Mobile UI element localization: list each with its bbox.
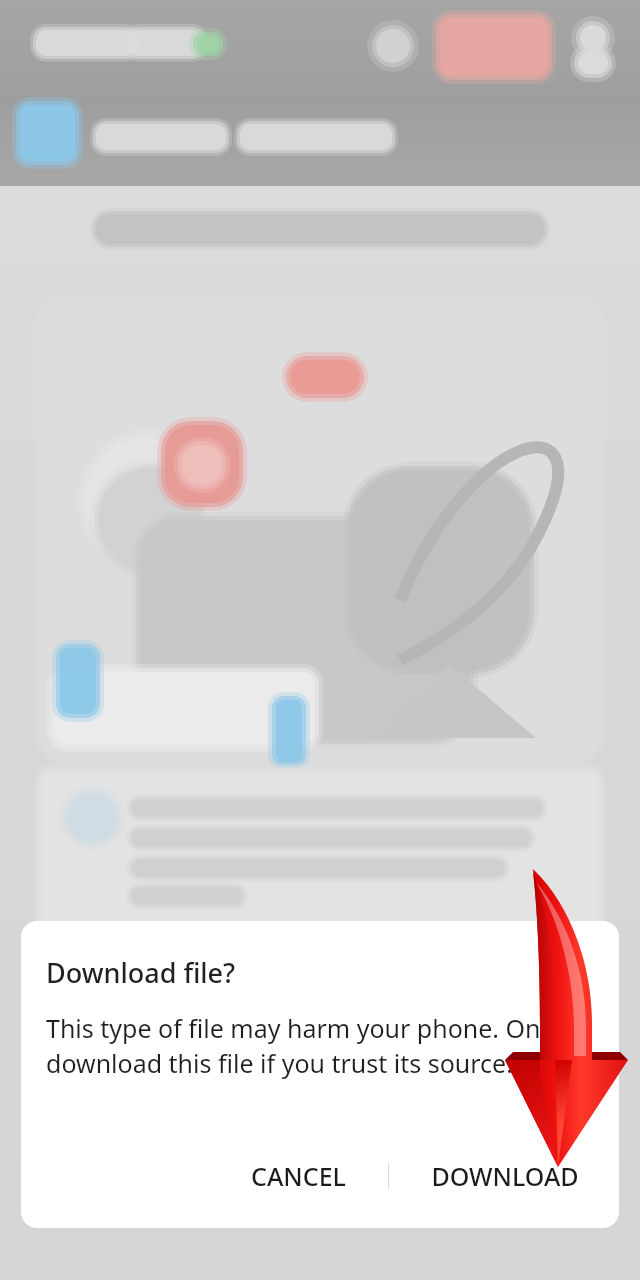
button[interactable]: CANCEL [233,1145,364,1207]
button[interactable]: DOWNLOAD [413,1145,597,1207]
staticText: Download file? [46,954,236,991]
staticText: This type of file may harm your phone. O… [46,1011,560,1081]
staticText: DOWNLOAD [431,1159,579,1193]
staticText: CANCEL [251,1159,346,1193]
